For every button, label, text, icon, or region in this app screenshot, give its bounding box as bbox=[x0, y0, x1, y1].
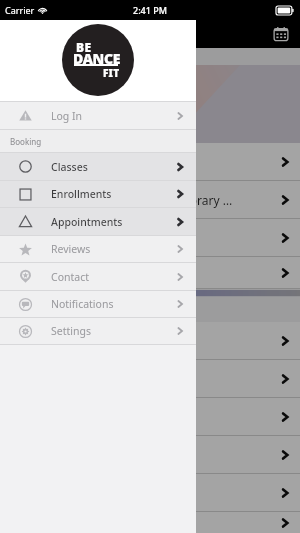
staticText: Classes bbox=[51, 160, 88, 174]
button[interactable]: Contact bbox=[0, 263, 196, 290]
staticText: Notifications bbox=[51, 297, 114, 311]
staticText: Log In bbox=[51, 109, 83, 123]
staticText: Adult Beginner Ballet, Contemporary & Ja… bbox=[12, 192, 241, 208]
button[interactable]: Adult Ballet - Beginners Level bbox=[0, 143, 300, 180]
button[interactable]: Salsa bbox=[0, 436, 300, 473]
staticText: Contact bbox=[51, 270, 89, 284]
staticText: Breakdance bbox=[12, 515, 241, 531]
staticText: Kids Ballet bbox=[12, 333, 241, 349]
button[interactable]: Barre Fitness bbox=[0, 360, 300, 397]
button[interactable]: Calendar bbox=[270, 23, 292, 45]
button[interactable]: Adult Beginner Ballet, Contemporary & Ja… bbox=[0, 181, 300, 218]
staticText: Tap Dance bbox=[12, 409, 241, 425]
staticText: Adult Ballet - Beginners Level bbox=[12, 154, 241, 170]
staticText: BE bbox=[76, 39, 92, 55]
button[interactable]: Appointments bbox=[0, 208, 196, 235]
button[interactable]: Hip Hop & Street Dance bbox=[0, 219, 300, 256]
staticText: DANCE bbox=[73, 49, 121, 68]
staticText: Reviews bbox=[51, 242, 91, 256]
button[interactable]: Log In bbox=[0, 102, 196, 129]
button[interactable]: Classes bbox=[0, 153, 196, 180]
staticText: Zumba Fitness bbox=[12, 265, 241, 281]
staticText: Appointments bbox=[51, 215, 123, 229]
staticText: Barre Fitness bbox=[12, 371, 241, 387]
button[interactable]: Enrollments bbox=[0, 181, 196, 207]
button[interactable]: Tap Dance bbox=[0, 398, 300, 435]
button[interactable]: Kids Ballet bbox=[0, 322, 300, 359]
staticText: Hip Hop & Street Dance bbox=[12, 230, 241, 246]
staticText: Carrier bbox=[5, 4, 35, 16]
staticText: FIT bbox=[103, 66, 120, 80]
button[interactable]: Ballroom bbox=[0, 474, 300, 511]
staticText: Enrollments bbox=[51, 187, 112, 201]
staticText: 2:41 PM bbox=[133, 4, 167, 16]
button[interactable]: Settings bbox=[0, 318, 196, 344]
staticText: Settings bbox=[51, 324, 91, 338]
staticText: Ballroom bbox=[12, 485, 241, 501]
staticText: Salsa bbox=[12, 447, 241, 463]
button[interactable]: Notifications bbox=[0, 291, 196, 317]
button[interactable]: Zumba Fitness bbox=[0, 257, 300, 288]
button[interactable]: Reviews bbox=[0, 236, 196, 262]
button[interactable]: Breakdance bbox=[0, 512, 300, 533]
staticText: Booking bbox=[10, 136, 42, 147]
